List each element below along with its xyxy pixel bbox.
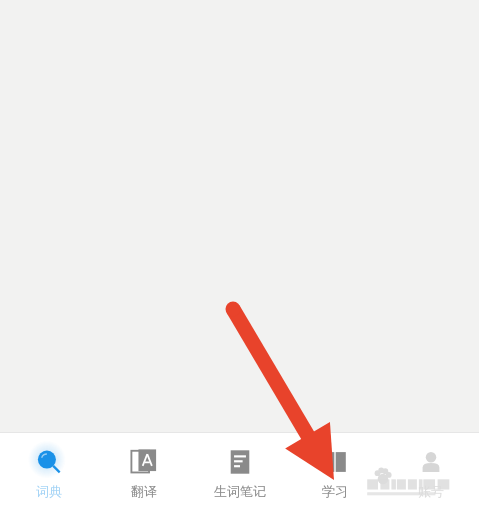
button[interactable]: 词典 [2, 437, 96, 507]
other: 账号 [416, 447, 446, 477]
other: 生词笔记 [225, 447, 255, 477]
button[interactable]: 账号 [384, 437, 478, 507]
staticText: 学习 [322, 483, 348, 499]
other: 翻译 [129, 447, 159, 477]
button[interactable]: 生词笔记 [193, 437, 287, 507]
staticText: 翻译 [131, 483, 157, 499]
staticText: 词典 [36, 483, 62, 499]
staticText: 账号 [418, 483, 444, 499]
staticText: 生词笔记 [214, 483, 266, 499]
other: 词典 [34, 447, 64, 477]
button[interactable]: 学习 [288, 437, 382, 507]
button[interactable]: 翻译 [97, 437, 191, 507]
other: 学习 [320, 447, 350, 477]
